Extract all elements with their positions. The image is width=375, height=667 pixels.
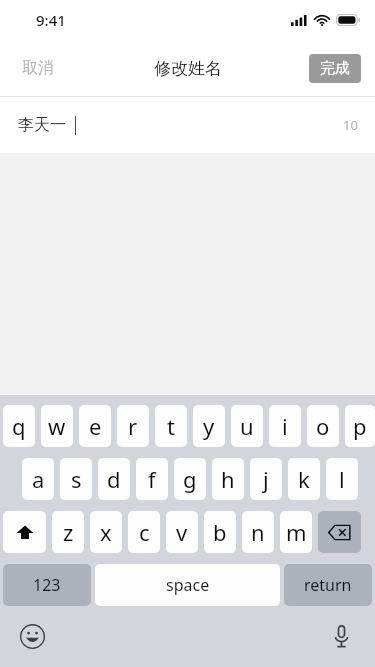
button[interactable]: f [136, 458, 168, 500]
button[interactable]: a [22, 458, 54, 500]
button[interactable]: e [79, 405, 111, 447]
button[interactable]: Backspace [318, 511, 361, 553]
staticText: x [100, 517, 112, 547]
button[interactable]: y [193, 405, 225, 447]
staticText: q [12, 411, 26, 441]
button[interactable]: q [3, 405, 35, 447]
button[interactable]: z [52, 511, 84, 553]
button[interactable]: s [60, 458, 92, 500]
staticText: space [166, 574, 210, 596]
button[interactable]: u [231, 405, 263, 447]
button[interactable]: x [90, 511, 122, 553]
button[interactable]: m [280, 511, 312, 553]
button[interactable]: v [166, 511, 198, 553]
staticText: s [71, 464, 82, 494]
button[interactable]: Shift [3, 511, 46, 553]
staticText: a [32, 464, 45, 494]
staticText: d [107, 464, 121, 494]
staticText: z [63, 517, 74, 547]
staticText: e [89, 411, 102, 441]
button[interactable]: l [326, 458, 358, 500]
staticText: return [304, 574, 352, 596]
button[interactable]: i [269, 405, 301, 447]
button[interactable]: j [250, 458, 282, 500]
staticText: l [339, 464, 345, 494]
staticText: t [167, 411, 175, 441]
staticText: 完成 [320, 59, 350, 78]
button[interactable]: Dictation [325, 620, 357, 652]
button[interactable]: d [98, 458, 130, 500]
staticText: o [316, 411, 330, 441]
staticText: y [203, 411, 215, 441]
staticText: 取消 [22, 58, 54, 78]
staticText: 修改姓名 [154, 58, 222, 79]
staticText: n [251, 517, 265, 547]
staticText: 9:41 [36, 10, 66, 30]
button[interactable]: p [345, 405, 375, 447]
staticText: j [263, 464, 269, 494]
staticText: g [183, 464, 197, 494]
button[interactable]: h [212, 458, 244, 500]
button[interactable]: o [307, 405, 339, 447]
staticText: 123 [33, 574, 61, 596]
button[interactable]: 取消 [0, 46, 76, 90]
button[interactable]: r [117, 405, 149, 447]
button[interactable]: 123 [3, 564, 91, 606]
staticText: f [148, 464, 156, 494]
staticText: 李天一 [18, 115, 66, 135]
button[interactable]: g [174, 458, 206, 500]
staticText: v [176, 517, 188, 547]
button[interactable]: w [41, 405, 73, 447]
button[interactable]: k [288, 458, 320, 500]
button[interactable]: t [155, 405, 187, 447]
button[interactable]: Emoji [16, 620, 48, 652]
button[interactable]: b [204, 511, 236, 553]
button[interactable]: space [95, 564, 280, 606]
button[interactable]: return [284, 564, 372, 606]
button[interactable]: c [128, 511, 160, 553]
staticText: u [240, 411, 254, 441]
staticText: w [48, 411, 66, 441]
staticText: h [221, 464, 235, 494]
staticText: m [286, 517, 307, 547]
staticText: b [213, 517, 227, 547]
staticText: 10 [343, 116, 358, 134]
staticText: r [128, 411, 138, 441]
staticText: c [139, 517, 150, 547]
staticText: k [298, 464, 310, 494]
staticText: i [282, 411, 288, 441]
button[interactable]: n [242, 511, 274, 553]
button[interactable]: 完成 [309, 54, 361, 83]
staticText: p [353, 411, 367, 441]
